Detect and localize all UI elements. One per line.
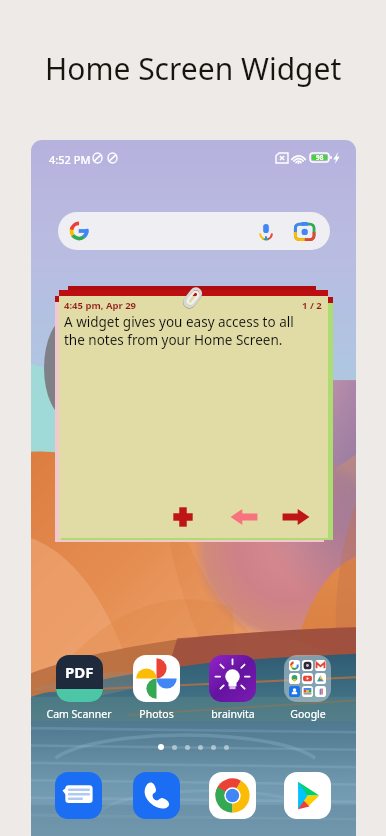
button[interactable]: Photos [119, 655, 194, 721]
button[interactable]: Phone [133, 772, 180, 819]
staticText: A widget gives you easy access to all th… [64, 313, 317, 349]
staticText: 4:52 PM [49, 152, 91, 167]
staticText: 1 / 2 [302, 299, 322, 312]
button[interactable]: Chrome [209, 772, 256, 819]
staticText: Google [290, 707, 326, 721]
staticText: 4:45 pm, Apr 29 [64, 299, 137, 312]
staticText: Home Screen Widget [45, 48, 342, 89]
staticText: 98 [316, 153, 324, 162]
button[interactable]: Add note [172, 506, 194, 528]
staticText: brainvita [211, 707, 255, 721]
button[interactable]: 4:45 pm, Apr 29 [59, 290, 328, 538]
button[interactable]: Google Search [58, 212, 330, 250]
button[interactable]: Google [270, 655, 345, 721]
staticText: Cam Scanner [46, 707, 112, 721]
button[interactable]: Next note [282, 508, 310, 526]
staticText: PDF [65, 662, 94, 682]
button[interactable]: brainvita [195, 655, 270, 721]
button[interactable]: Messages [55, 772, 102, 819]
button[interactable]: PDF [41, 655, 116, 721]
button[interactable]: Previous note [230, 508, 258, 526]
staticText: Photos [139, 707, 174, 721]
button[interactable]: Play Store [284, 772, 331, 819]
